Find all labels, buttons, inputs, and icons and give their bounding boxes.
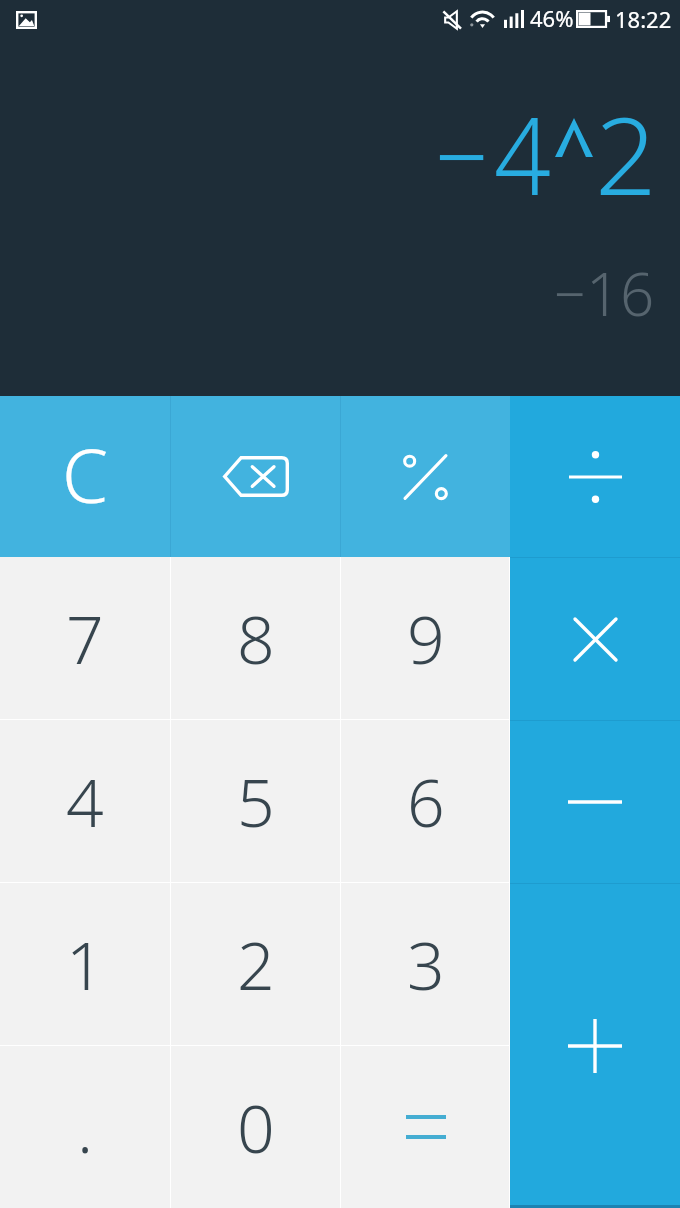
staticText: 18:22	[615, 4, 672, 34]
staticText: 6	[407, 756, 445, 846]
button[interactable]: Percent	[341, 396, 510, 557]
button[interactable]: Multiply	[510, 558, 680, 720]
staticText: 0	[237, 1082, 275, 1172]
button[interactable]: 0	[171, 1046, 340, 1208]
button[interactable]: 8	[171, 557, 340, 719]
staticText: −	[435, 82, 489, 226]
staticText: 4	[494, 82, 551, 226]
staticText: 1	[66, 919, 104, 1009]
staticText: 4	[66, 756, 104, 846]
staticText: 2	[595, 82, 657, 226]
staticText: C	[62, 424, 109, 525]
staticText: 9	[407, 593, 445, 683]
button[interactable]: .	[0, 1046, 170, 1208]
button[interactable]: 5	[171, 720, 340, 882]
staticText: .	[77, 1082, 94, 1172]
staticText: 5	[237, 756, 275, 846]
staticText: 46%	[530, 3, 574, 33]
button[interactable]: 7	[0, 557, 170, 719]
button[interactable]: 9	[341, 557, 510, 719]
staticText: 6	[620, 252, 655, 334]
button[interactable]: Plus	[510, 884, 680, 1208]
button[interactable]: Minus	[510, 721, 680, 883]
other: Screenshot	[16, 11, 37, 29]
button[interactable]: 3	[341, 883, 510, 1045]
staticText: 7	[66, 593, 104, 683]
button[interactable]: Clear	[0, 396, 170, 557]
button[interactable]: 4	[0, 720, 170, 882]
button[interactable]: 6	[341, 720, 510, 882]
staticText: 1	[586, 252, 621, 334]
staticText: 8	[237, 593, 275, 683]
button[interactable]: Backspace	[171, 396, 340, 557]
staticText: −	[554, 252, 586, 334]
button[interactable]: Equals	[341, 1046, 510, 1208]
staticText: 3	[407, 919, 445, 1009]
button[interactable]: 2	[171, 883, 340, 1045]
button[interactable]: 1	[0, 883, 170, 1045]
staticText: 2	[237, 919, 275, 1009]
button[interactable]: Divide	[510, 396, 680, 557]
